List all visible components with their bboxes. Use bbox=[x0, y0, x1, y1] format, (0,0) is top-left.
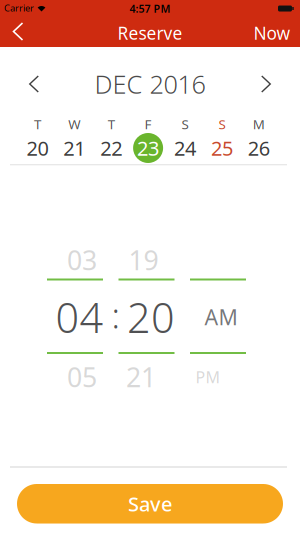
button[interactable]: 20 bbox=[20, 133, 54, 163]
staticText: T bbox=[34, 115, 41, 133]
button[interactable]: Now bbox=[250, 19, 294, 46]
staticText: 23 bbox=[137, 135, 159, 161]
button[interactable]: Previous week bbox=[17, 70, 51, 98]
staticText: 20 bbox=[26, 135, 48, 161]
button[interactable]: Save bbox=[17, 484, 283, 523]
button[interactable]: 25 bbox=[205, 133, 239, 163]
button[interactable]: 23 bbox=[131, 133, 165, 163]
staticText: : bbox=[111, 292, 119, 338]
staticText: 04 bbox=[55, 290, 103, 344]
staticText: AM bbox=[204, 303, 237, 331]
button[interactable]: 22 bbox=[94, 133, 128, 163]
staticText: 26 bbox=[248, 135, 270, 161]
staticText: F bbox=[145, 115, 152, 133]
button[interactable]: 21 bbox=[57, 133, 91, 163]
staticText: Reserve bbox=[117, 21, 182, 44]
staticText: 20 bbox=[127, 290, 175, 344]
button[interactable]: Next week bbox=[249, 70, 283, 98]
staticText: 25 bbox=[211, 135, 233, 161]
staticText: W bbox=[68, 115, 80, 133]
staticText: 22 bbox=[100, 135, 122, 161]
staticText: T bbox=[108, 115, 115, 133]
staticText: 21 bbox=[63, 135, 85, 161]
staticText: 03 bbox=[67, 242, 97, 278]
staticText: S bbox=[218, 115, 225, 133]
staticText: Carrier bbox=[4, 2, 34, 14]
staticText: Now bbox=[253, 21, 290, 44]
staticText: S bbox=[181, 115, 188, 133]
staticText: 21 bbox=[126, 359, 156, 395]
staticText: M bbox=[253, 115, 265, 133]
button[interactable]: 26 bbox=[242, 133, 276, 163]
button[interactable]: 24 bbox=[168, 133, 202, 163]
button[interactable]: Back bbox=[0, 20, 36, 47]
staticText: 05 bbox=[67, 359, 97, 395]
staticText: Save bbox=[128, 490, 172, 517]
staticText: 24 bbox=[174, 135, 196, 161]
staticText: 4:57 PM bbox=[129, 1, 170, 16]
staticText: DEC 2016 bbox=[94, 67, 205, 101]
staticText: 19 bbox=[128, 242, 158, 278]
staticText: PM bbox=[195, 366, 220, 388]
